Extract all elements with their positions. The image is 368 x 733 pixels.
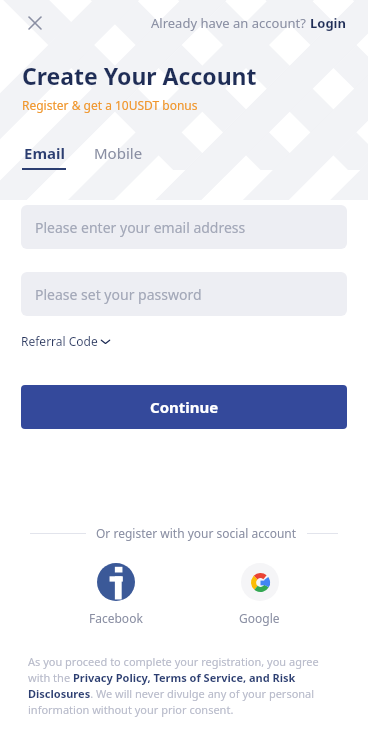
button[interactable]: Already have an account? [151, 14, 346, 32]
staticText: Register & get a 10USDT bonus [22, 97, 198, 113]
button[interactable]: Referral Code [21, 333, 111, 349]
staticText: Mobile [94, 143, 143, 163]
staticText: Continue [150, 397, 219, 417]
staticText: Create Your Account [22, 60, 257, 91]
button[interactable]: Please enter your email address [21, 205, 347, 249]
staticText: Facebook [89, 610, 143, 626]
button[interactable]: Close [22, 10, 48, 36]
staticText: Google [239, 610, 280, 626]
button[interactable]: Email [22, 143, 66, 170]
button[interactable]: Continue [21, 385, 347, 429]
staticText: Email [24, 143, 65, 163]
staticText: Login [310, 14, 346, 32]
button[interactable]: Google [215, 563, 304, 626]
staticText: Or register with your social account [96, 525, 297, 541]
button[interactable]: Facebook [65, 563, 167, 626]
button[interactable]: Mobile [94, 143, 143, 163]
staticText: Please enter your email address [35, 218, 246, 237]
staticText: Please set your password [35, 285, 202, 304]
staticText: As you proceed to complete your registra… [28, 654, 340, 717]
staticText: Referral Code [21, 333, 98, 349]
button[interactable]: Please set your password [21, 272, 347, 316]
staticText: Already have an account? [151, 14, 310, 32]
